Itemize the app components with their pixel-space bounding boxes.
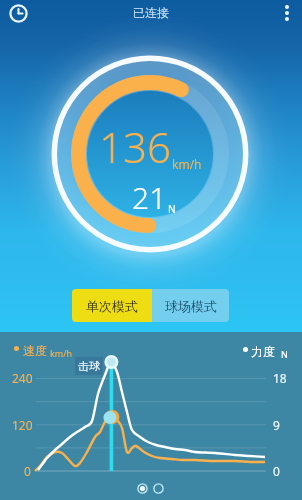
staticText: 已连接 bbox=[133, 5, 169, 20]
staticText: 21 bbox=[132, 177, 167, 218]
button[interactable]: More options bbox=[275, 1, 299, 25]
button[interactable]: History bbox=[7, 2, 30, 25]
button[interactable]: 球场模式 bbox=[152, 289, 229, 322]
staticText: 球场模式 bbox=[165, 298, 217, 314]
staticText: 0 bbox=[273, 463, 280, 479]
staticText: km/h bbox=[50, 347, 73, 359]
staticText: 18 bbox=[273, 370, 287, 386]
button[interactable]: 单次模式 bbox=[72, 289, 152, 322]
staticText: 0 bbox=[24, 463, 31, 479]
staticText: 136 bbox=[99, 118, 171, 175]
staticText: 击球 bbox=[78, 359, 100, 373]
button[interactable]: 击球 bbox=[75, 357, 103, 375]
staticText: 力度 bbox=[251, 344, 275, 359]
staticText: N bbox=[168, 202, 176, 216]
staticText: 单次模式 bbox=[86, 298, 138, 314]
staticText: 速度 bbox=[23, 343, 47, 358]
staticText: 9 bbox=[273, 417, 280, 433]
staticText: km/h bbox=[172, 156, 202, 172]
staticText: 120 bbox=[12, 417, 33, 433]
staticText: 240 bbox=[12, 370, 33, 386]
staticText: N bbox=[281, 348, 288, 360]
